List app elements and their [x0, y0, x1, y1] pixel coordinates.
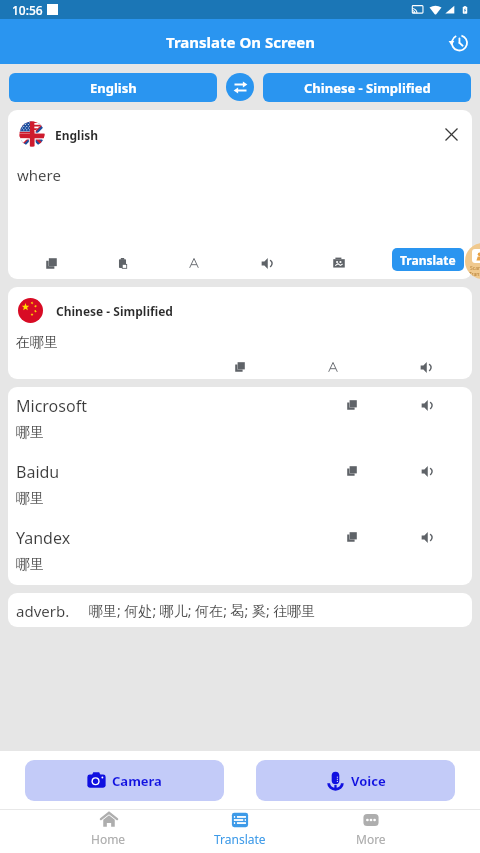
button[interactable]: Speak [411, 521, 443, 553]
button[interactable]: Copy [35, 247, 67, 279]
staticText: 哪里; 何处; 哪儿; 何在; 曷; 奚; 往哪里 [89, 601, 316, 620]
staticText: Chinese - Simplified [304, 79, 431, 97]
button[interactable]: Home [68, 811, 148, 853]
button[interactable]: Camera [25, 760, 224, 801]
button[interactable]: Overlay bubble [465, 243, 480, 279]
button[interactable]: Speak [410, 351, 442, 379]
staticText: adverb. [16, 601, 70, 621]
button[interactable]: Translate [200, 811, 280, 853]
staticText: Microsoft [16, 395, 87, 417]
staticText: Trans [469, 271, 480, 278]
staticText: Home [91, 831, 126, 847]
button[interactable]: Image translate [323, 247, 355, 279]
staticText: Baidu [16, 461, 60, 483]
button[interactable]: Voice [256, 760, 455, 801]
button[interactable]: Speak [411, 389, 443, 421]
button[interactable]: Text size [317, 351, 349, 379]
staticText: English [55, 127, 99, 143]
button[interactable]: History [442, 26, 474, 58]
staticText: Translate [400, 252, 456, 268]
button[interactable]: Copy [336, 455, 368, 487]
staticText: Yandex [16, 527, 71, 549]
button[interactable]: Chinese - Simplified [263, 73, 471, 102]
button[interactable]: Copy [224, 351, 256, 379]
staticText: where [17, 165, 61, 185]
button[interactable]: More [331, 811, 411, 853]
staticText: Voice [351, 772, 386, 790]
staticText: 在哪里 [16, 334, 58, 352]
staticText: Chinese - Simplified [56, 303, 173, 319]
staticText: English [90, 79, 137, 97]
staticText: 10:56 [12, 2, 43, 18]
staticText: 哪里 [16, 556, 44, 574]
button[interactable]: Translate [392, 248, 464, 271]
staticText: Camera [112, 772, 162, 790]
button[interactable]: Text size [178, 247, 210, 279]
button[interactable]: Swap languages [226, 73, 254, 101]
button[interactable]: Copy [336, 521, 368, 553]
staticText: Scan [470, 265, 480, 272]
staticText: More [356, 831, 386, 847]
button[interactable]: English [9, 73, 217, 102]
staticText: 哪里 [16, 424, 44, 442]
button[interactable]: Speak [411, 455, 443, 487]
button[interactable]: Paste [106, 247, 138, 279]
button[interactable]: Clear text [434, 117, 468, 151]
staticText: 哪里 [16, 490, 44, 508]
staticText: Translate [214, 831, 266, 847]
button[interactable]: Copy [336, 389, 368, 421]
button[interactable]: Speak [251, 247, 283, 279]
staticText: Translate On Screen [166, 32, 315, 52]
